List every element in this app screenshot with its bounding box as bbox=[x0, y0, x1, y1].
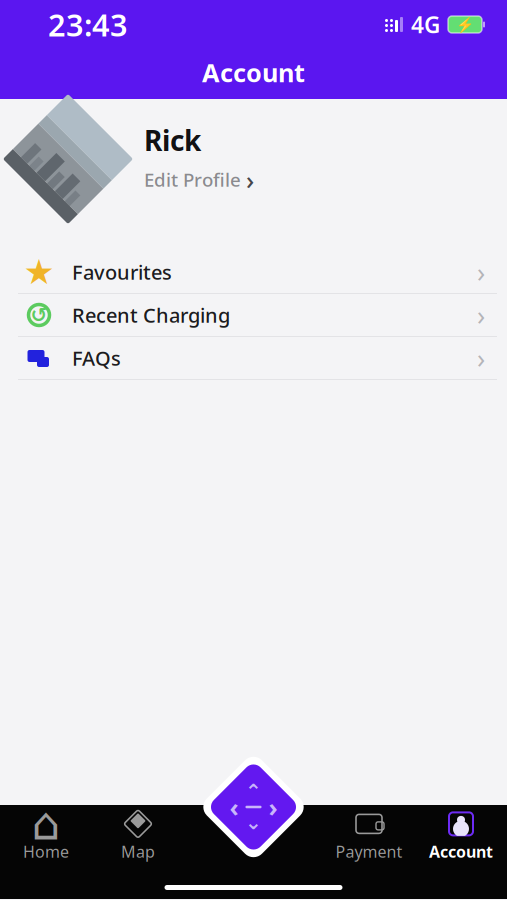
button[interactable]: Edit Profile bbox=[144, 163, 254, 196]
staticText: Payment bbox=[335, 841, 402, 862]
staticText: ⌂ bbox=[31, 798, 60, 850]
staticText: Map bbox=[121, 841, 155, 862]
staticText: 4G bbox=[411, 9, 440, 39]
staticText: › bbox=[246, 163, 254, 196]
staticText: › bbox=[268, 790, 277, 824]
staticText: Favourites bbox=[72, 259, 172, 285]
staticText: ★ bbox=[23, 252, 54, 292]
staticText: Edit Profile bbox=[144, 167, 241, 192]
button[interactable]: Scan bbox=[198, 759, 308, 855]
staticText: ↺ bbox=[30, 304, 47, 326]
staticText: Recent Charging bbox=[72, 302, 230, 328]
button[interactable]: ★ bbox=[0, 251, 507, 294]
staticText: › bbox=[477, 297, 485, 333]
staticText: ⌃ bbox=[245, 780, 262, 803]
button[interactable]: Account bbox=[415, 807, 507, 865]
staticText: ⌄ bbox=[245, 811, 262, 834]
button[interactable]: FAQs bbox=[0, 337, 507, 380]
staticText: Home bbox=[23, 841, 69, 862]
staticText: Account bbox=[202, 56, 305, 89]
staticText: Account bbox=[429, 841, 493, 862]
staticText: › bbox=[477, 254, 485, 290]
button[interactable]: ⌂ bbox=[0, 807, 92, 865]
button[interactable]: Payment bbox=[323, 807, 415, 865]
staticText: › bbox=[477, 340, 485, 376]
staticText: Rick bbox=[144, 122, 201, 159]
staticText: FAQs bbox=[72, 345, 121, 371]
button[interactable]: Map bbox=[92, 807, 184, 865]
staticText: ⚡ bbox=[456, 16, 474, 33]
button[interactable]: ↺ bbox=[0, 294, 507, 337]
staticText: 23:43 bbox=[48, 4, 128, 45]
staticText: ‹ bbox=[229, 790, 238, 824]
